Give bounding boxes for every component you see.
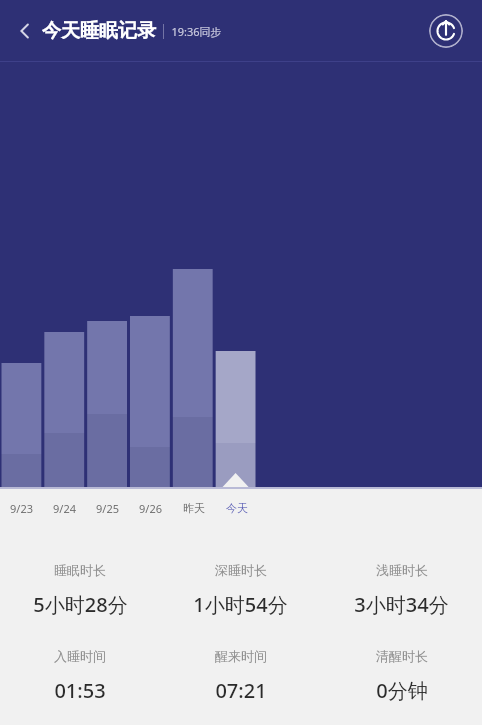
button[interactable]: 9/23 [0,501,43,516]
button[interactable]: 昨天 [172,501,215,515]
staticText: 深睡时长 [215,562,267,578]
staticText: 浅睡时长 [376,562,428,578]
staticText: 3小时34分 [354,591,449,618]
button[interactable]: 清醒时长 [321,648,482,704]
button[interactable]: 今天 [215,501,258,515]
staticText: 9/25 [96,501,119,516]
button[interactable]: 深睡时长 [160,562,321,618]
staticText: 19:36同步 [171,24,222,39]
button[interactable]: 9/25 [86,501,129,516]
button[interactable]: Back [4,10,46,52]
button[interactable]: 醒来时间 [160,648,321,704]
staticText: 今天睡眠记录 [42,19,156,43]
staticText: 01:53 [54,677,106,704]
button[interactable]: 浅睡时长 [321,562,482,618]
staticText: 昨天 [183,501,205,515]
button[interactable]: 9/26 [129,501,172,516]
staticText: 9/24 [53,501,76,516]
staticText: 0分钟 [376,677,428,704]
button[interactable]: 睡眠时长 [0,562,160,618]
staticText: 今天 [226,501,248,515]
staticText: 睡眠时长 [54,562,106,578]
staticText: 5小时28分 [33,591,128,618]
staticText: 醒来时间 [215,648,267,664]
staticText: 07:21 [215,677,267,704]
staticText: 入睡时间 [54,648,106,664]
button[interactable]: 入睡时间 [0,648,160,704]
staticText: 9/23 [10,501,33,516]
button[interactable]: Sync [429,14,463,48]
staticText: 9/26 [139,501,162,516]
staticText: 1小时54分 [193,591,288,618]
button[interactable]: 9/24 [43,501,86,516]
staticText: 清醒时长 [376,648,428,664]
